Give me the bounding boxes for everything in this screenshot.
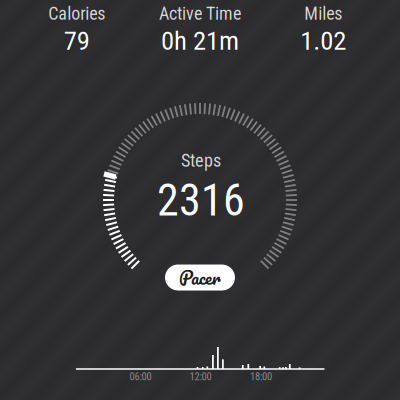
staticText: 79 xyxy=(64,25,90,56)
staticText: 0h 21m xyxy=(161,25,239,56)
staticText: 12:00 xyxy=(189,370,211,383)
staticText: Active Time xyxy=(159,3,241,24)
staticText: 1.02 xyxy=(300,25,346,56)
staticText: Calories xyxy=(48,3,105,24)
staticText: 06:00 xyxy=(129,370,151,383)
staticText: Miles xyxy=(304,3,342,24)
staticText: 18:00 xyxy=(250,370,272,383)
staticText: Pacer xyxy=(179,262,221,293)
button[interactable]: Pacer xyxy=(165,264,235,290)
staticText: Steps xyxy=(181,150,221,171)
staticText: 2316 xyxy=(157,175,245,226)
